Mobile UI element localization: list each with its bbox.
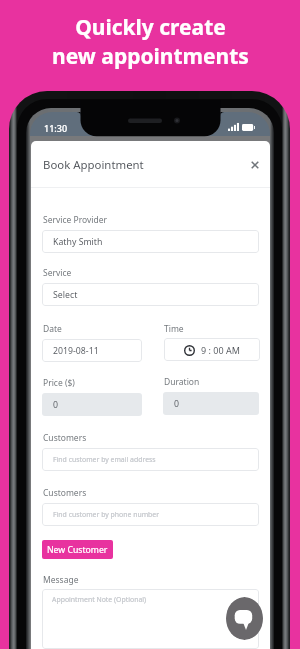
- staticText: Message: [43, 574, 79, 586]
- staticText: 2019-08-11: [53, 345, 99, 357]
- staticText: Service Provider: [43, 214, 108, 226]
- button[interactable]: Find customer by phone number: [42, 503, 259, 526]
- staticText: Select: [53, 289, 78, 301]
- button[interactable]: Select: [42, 283, 259, 306]
- button[interactable]: Kathy Smith: [42, 230, 259, 253]
- staticText: Appointment Note (Optional): [52, 595, 147, 604]
- staticText: 0: [174, 398, 180, 410]
- staticText: Customers: [43, 487, 87, 499]
- button[interactable]: 9 : 00 AM: [164, 338, 260, 361]
- staticText: 9 : 00 AM: [201, 344, 240, 356]
- button[interactable]: Chat: [226, 597, 263, 640]
- button[interactable]: Close: [245, 155, 264, 174]
- staticText: Find customer by phone number: [53, 510, 160, 519]
- staticText: Book Appointment: [43, 157, 144, 173]
- button[interactable]: 0: [42, 393, 142, 416]
- staticText: Quickly create: [75, 13, 226, 42]
- button[interactable]: Appointment Note (Optional): [42, 589, 259, 649]
- staticText: Service: [43, 267, 72, 279]
- button[interactable]: Find customer by email address: [42, 448, 259, 471]
- button[interactable]: 2019-08-11: [42, 339, 142, 362]
- staticText: Find customer by email address: [53, 455, 156, 464]
- staticText: 11:30: [44, 122, 68, 134]
- staticText: Date: [43, 323, 62, 335]
- button[interactable]: 0: [163, 392, 259, 415]
- staticText: Duration: [164, 376, 200, 388]
- staticText: Price ($): [43, 377, 75, 389]
- staticText: Customers: [43, 432, 87, 444]
- staticText: 0: [53, 399, 59, 411]
- button[interactable]: New Customer: [42, 540, 113, 559]
- staticText: new appointments: [52, 42, 249, 71]
- staticText: Kathy Smith: [53, 236, 103, 248]
- staticText: New Customer: [47, 544, 108, 556]
- staticText: Time: [164, 323, 184, 335]
